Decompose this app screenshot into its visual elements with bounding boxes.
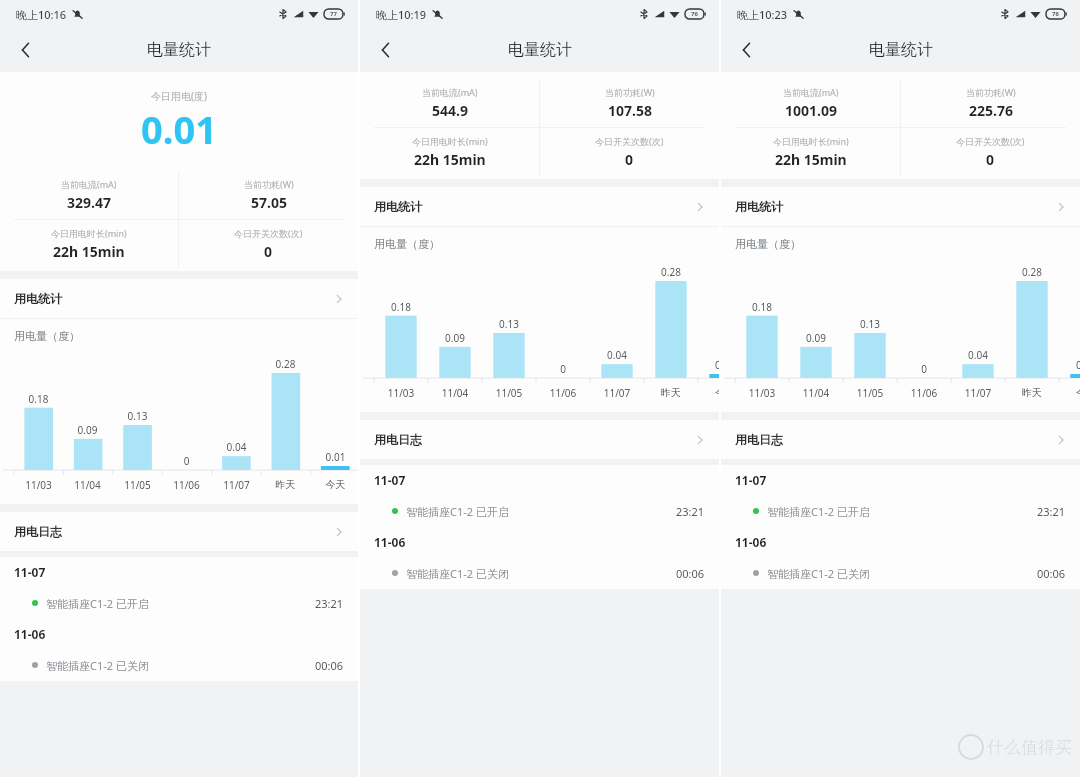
other: 用电日志: [332, 525, 346, 539]
staticText: 11/07: [951, 386, 1005, 400]
staticText: 晚上10:16: [16, 7, 67, 22]
staticText: 今日开关次数(次): [595, 135, 664, 147]
button[interactable]: 用电日志: [0, 512, 358, 551]
staticText: 晚上10:19: [376, 7, 427, 22]
staticText: 0: [986, 150, 995, 169]
button[interactable]: 用电日志: [721, 420, 1080, 459]
staticText: 智能插座C1-2 已开启: [46, 596, 149, 611]
staticText: 11/06: [897, 386, 951, 400]
staticText: 0.01: [863, 11, 939, 63]
other: 用电统计: [693, 200, 707, 214]
staticText: 什么值得买: [987, 737, 1072, 758]
staticText: 329.47: [67, 193, 111, 212]
staticText: 22h 15min: [414, 150, 486, 169]
button[interactable]: 智能插座C1-2 已关闭: [721, 557, 1080, 589]
other: 用电日志: [693, 433, 707, 447]
staticText: 11/05: [843, 386, 897, 400]
staticText: 0.04: [951, 348, 1005, 362]
staticText: 0.04: [212, 440, 261, 454]
staticText: 0.18: [735, 300, 789, 314]
button[interactable]: 用电统计: [0, 279, 358, 318]
staticText: 0.13: [843, 317, 897, 331]
staticText: 0.28: [261, 357, 310, 371]
button[interactable]: 智能插座C1-2 已开启: [360, 495, 719, 527]
staticText: 用电统计: [735, 199, 783, 214]
staticText: 今日用电时长(min): [51, 227, 127, 239]
staticText: 11/06: [162, 478, 211, 492]
staticText: 0: [536, 362, 590, 376]
staticText: 当前电流(mA): [422, 86, 478, 98]
staticText: 0.01: [698, 358, 719, 372]
staticText: 11-07: [14, 564, 46, 580]
staticText: 今天: [698, 386, 719, 399]
staticText: 225.76: [969, 101, 1013, 120]
staticText: 11/03: [735, 386, 789, 400]
staticText: 00:06: [315, 658, 344, 673]
staticText: 23:21: [676, 504, 705, 519]
staticText: 0.28: [1005, 265, 1059, 279]
staticText: 智能插座C1-2 已关闭: [767, 566, 870, 581]
button[interactable]: 用电统计: [360, 187, 719, 226]
staticText: 用电日志: [374, 432, 422, 447]
staticText: 11/05: [113, 478, 162, 492]
staticText: 今日用电(度): [151, 89, 207, 103]
staticText: 107.58: [608, 101, 652, 120]
button[interactable]: 智能插座C1-2 已关闭: [0, 649, 358, 681]
staticText: 0: [264, 242, 273, 261]
staticText: 11/04: [789, 386, 843, 400]
staticText: 用电统计: [374, 199, 422, 214]
staticText: 0.04: [590, 348, 644, 362]
staticText: 0.01: [502, 11, 578, 63]
staticText: 当前电流(mA): [61, 178, 117, 190]
staticText: 11/04: [63, 478, 112, 492]
staticText: 11/06: [536, 386, 590, 400]
button[interactable]: 智能插座C1-2 已开启: [721, 495, 1080, 527]
staticText: 电量统计: [869, 40, 933, 60]
button[interactable]: 智能插座C1-2 已开启: [0, 587, 358, 619]
staticText: 昨天: [261, 478, 310, 491]
other: 用电统计: [1054, 200, 1068, 214]
other: 用电日志: [1054, 433, 1068, 447]
staticText: 76: [1052, 10, 1059, 18]
staticText: 22h 15min: [53, 242, 125, 261]
staticText: 0: [897, 362, 951, 376]
staticText: 11-06: [14, 626, 46, 642]
staticText: 当前功耗(W): [966, 86, 1016, 98]
button[interactable]: 用电统计: [721, 187, 1080, 226]
staticText: 11-06: [374, 534, 406, 550]
staticText: 0.01: [141, 103, 217, 155]
staticText: 11-07: [735, 472, 767, 488]
button[interactable]: Back: [6, 30, 46, 70]
button[interactable]: 用电日志: [360, 420, 719, 459]
staticText: 23:21: [315, 596, 344, 611]
staticText: 0.09: [428, 331, 482, 345]
staticText: 544.9: [432, 101, 468, 120]
staticText: 用电统计: [14, 291, 62, 306]
staticText: 用电量（度）: [374, 237, 440, 251]
staticText: 用电量（度）: [14, 329, 80, 343]
staticText: 0.28: [644, 265, 698, 279]
staticText: 昨天: [1005, 386, 1059, 399]
staticText: 智能插座C1-2 已开启: [406, 504, 509, 519]
staticText: 当前功耗(W): [244, 178, 294, 190]
staticText: 23:21: [1037, 504, 1066, 519]
staticText: 0.13: [113, 409, 162, 423]
staticText: 0.18: [14, 392, 63, 406]
button[interactable]: Back: [727, 30, 767, 70]
staticText: 0.01: [311, 450, 358, 464]
button[interactable]: Back: [366, 30, 406, 70]
staticText: 0.13: [482, 317, 536, 331]
staticText: 今日用电时长(min): [412, 135, 488, 147]
staticText: 晚上10:23: [737, 7, 788, 22]
staticText: 11/03: [14, 478, 63, 492]
staticText: 57.05: [251, 193, 287, 212]
staticText: 0.09: [789, 331, 843, 345]
button[interactable]: 智能插座C1-2 已关闭: [360, 557, 719, 589]
staticText: 11-06: [735, 534, 767, 550]
staticText: 0: [625, 150, 634, 169]
staticText: 昨天: [644, 386, 698, 399]
staticText: 00:06: [676, 566, 705, 581]
staticText: 0: [162, 454, 211, 468]
staticText: 今日开关次数(次): [956, 135, 1025, 147]
